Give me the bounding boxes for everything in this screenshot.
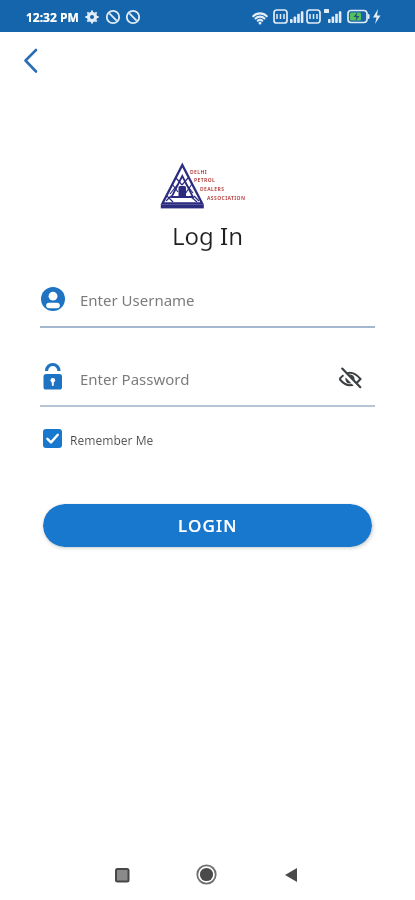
button[interactable] [192,859,221,888]
button[interactable] [278,861,306,889]
button[interactable]: Enter Password [40,362,375,407]
staticText: DEALERS [200,186,225,193]
staticText: ASSOCIATION [207,195,246,202]
button[interactable]: Enter Username [40,282,375,328]
staticText: Log In [172,219,244,252]
staticText: Enter Password [80,369,190,389]
button[interactable] [338,368,362,390]
staticText: DELHI [190,169,208,176]
staticText: Enter Username [80,290,195,310]
staticText: LOGIN [178,514,238,537]
staticText: 12:32 PM [26,9,79,25]
button[interactable]: LOGIN [43,504,372,547]
button[interactable] [108,861,136,889]
button[interactable] [18,44,50,78]
staticText: Remember Me [70,432,154,448]
button[interactable]: Remember Me [43,429,213,453]
staticText: PETROL [194,177,216,184]
